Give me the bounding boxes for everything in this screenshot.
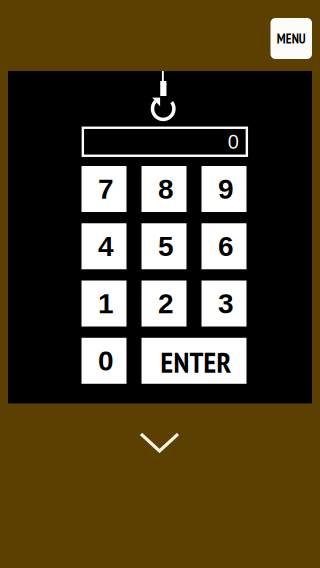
staticText: 0 [98,345,114,376]
button[interactable]: 0 [81,338,126,384]
staticText: 8 [158,173,174,205]
staticText: 3 [218,288,234,319]
staticText: 4 [98,231,114,262]
button[interactable]: ENTER [141,338,246,384]
staticText: 9 [218,173,234,205]
staticText: 7 [98,173,114,205]
staticText: 1 [98,288,114,319]
button[interactable]: MENU [270,18,312,59]
button[interactable]: Reset [148,71,178,121]
button[interactable]: 3 [201,280,246,326]
button[interactable]: 1 [81,280,126,326]
staticText: MENU [277,30,306,47]
staticText: 2 [158,288,174,319]
staticText: 0 [228,131,239,153]
staticText: 5 [158,231,174,262]
button[interactable]: 5 [141,223,186,269]
button[interactable]: 7 [81,166,126,212]
button[interactable]: 9 [201,166,246,212]
staticText: 6 [218,231,234,262]
button[interactable]: Scroll down [139,432,180,453]
staticText: ENTER [160,343,231,381]
button[interactable]: 8 [141,166,186,212]
button[interactable]: 2 [141,280,186,326]
button[interactable]: 4 [81,223,126,269]
button[interactable]: 6 [201,223,246,269]
